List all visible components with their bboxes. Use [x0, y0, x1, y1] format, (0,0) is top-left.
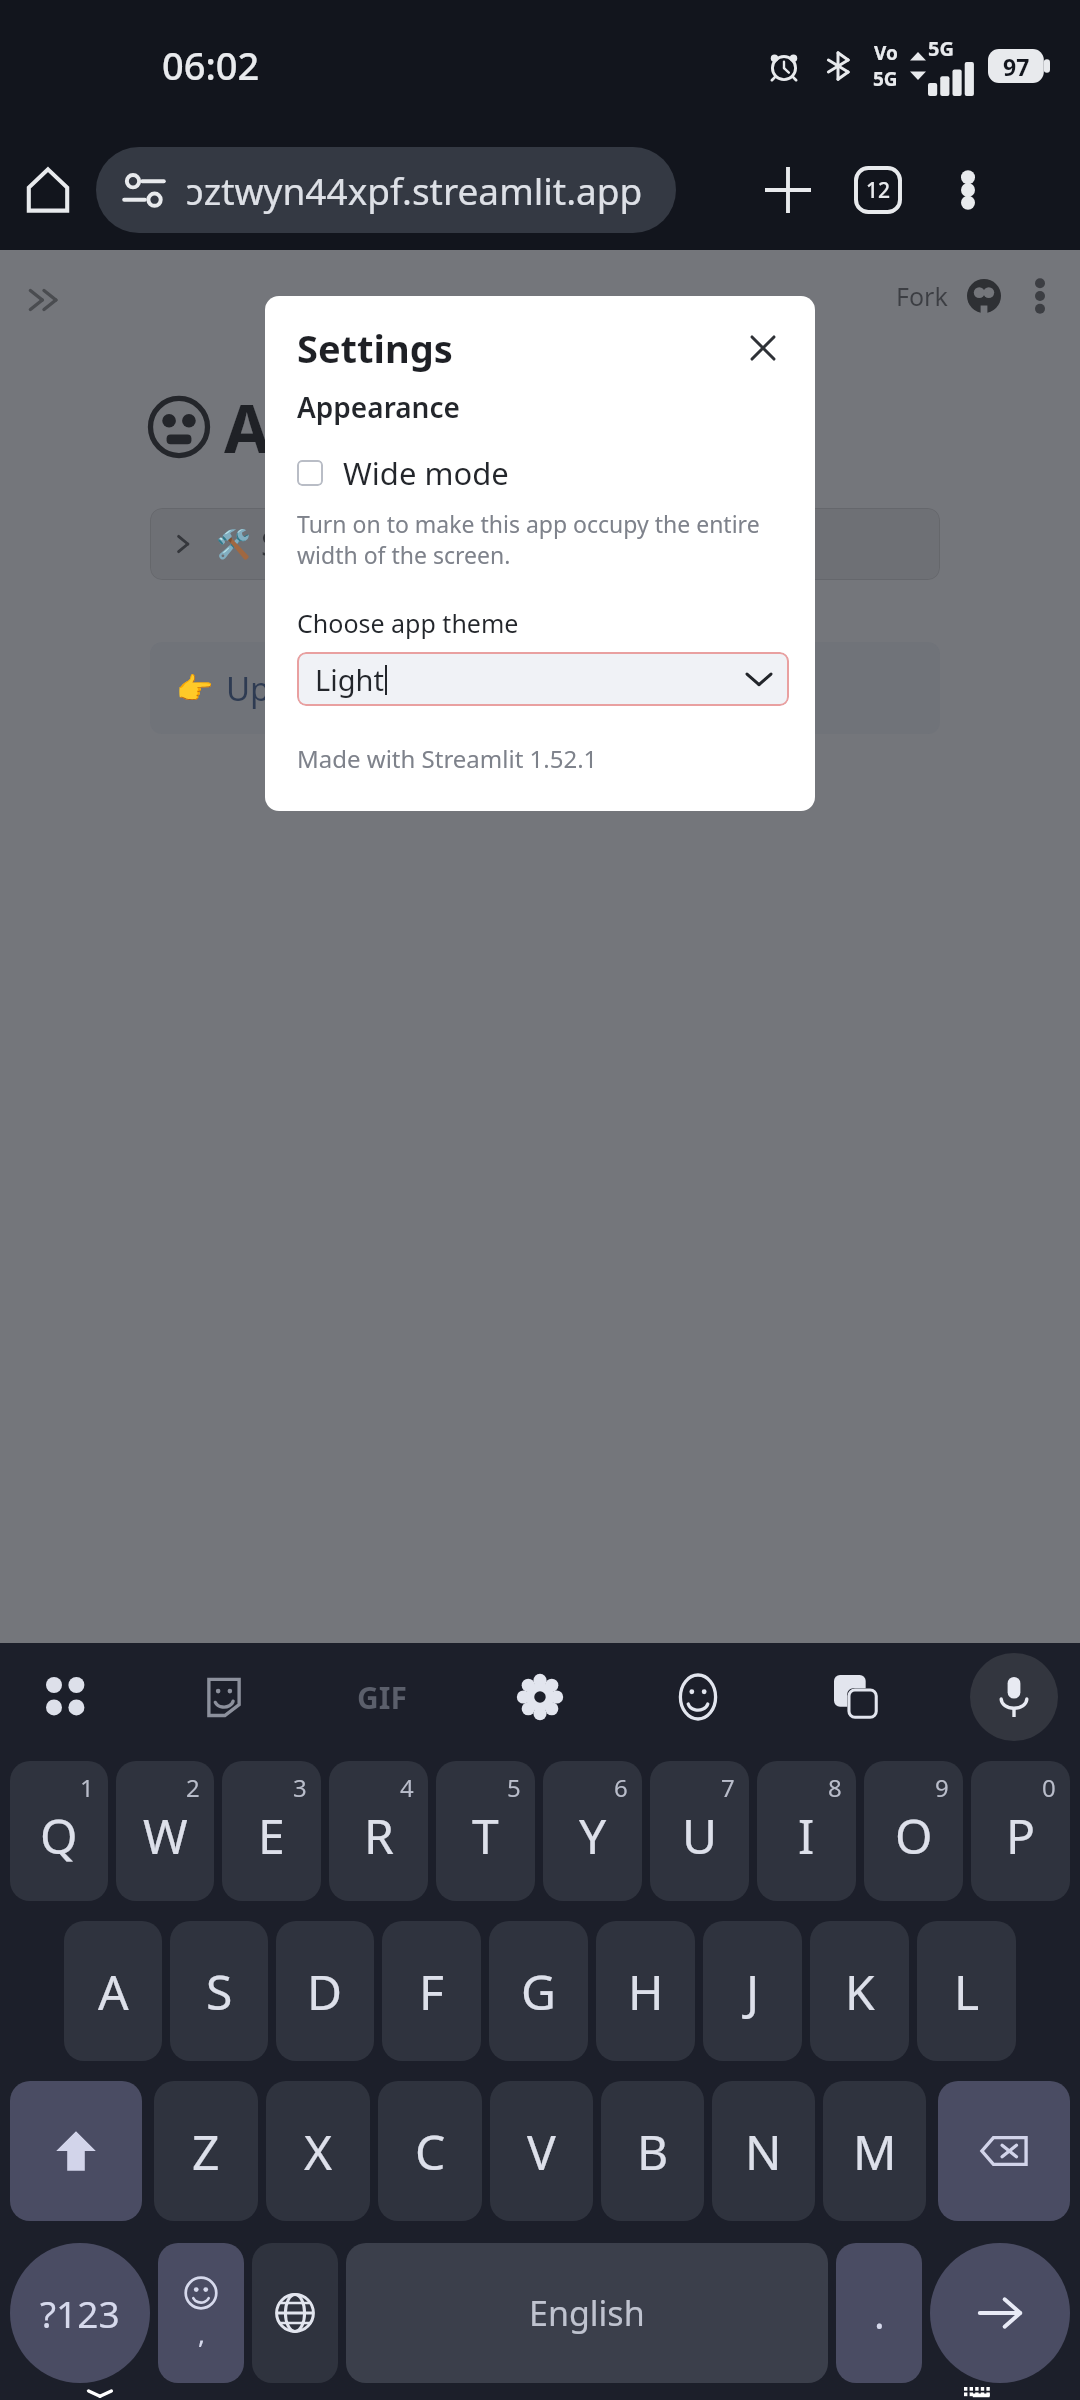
button[interactable]: Switch keyboard — [954, 2387, 1014, 2400]
staticText: 2 — [186, 1771, 200, 1804]
button[interactable]: GIF — [338, 1653, 426, 1741]
staticText: U — [682, 1803, 718, 1868]
button[interactable]: Wide mode — [297, 452, 509, 494]
button[interactable]: ?123 — [10, 2243, 150, 2383]
button[interactable]: 1 — [10, 1761, 108, 1901]
staticText: 9 — [935, 1771, 949, 1804]
button[interactable]: . — [836, 2243, 922, 2383]
button[interactable]: New tab — [743, 145, 833, 235]
staticText: A — [98, 1959, 129, 2024]
button[interactable]: Emoji — [654, 1653, 742, 1741]
staticText: Z — [192, 2119, 220, 2184]
staticText: W — [143, 1803, 188, 1868]
button[interactable]: S — [170, 1921, 268, 2061]
staticText: S — [206, 1959, 233, 2024]
button[interactable]: Emoji — [158, 2243, 244, 2383]
staticText: 🛠 — [216, 528, 251, 561]
button[interactable]: A — [64, 1921, 162, 2061]
staticText: Q — [40, 1803, 78, 1868]
button[interactable]: Expand sidebar — [14, 270, 74, 330]
button[interactable]: 2 — [116, 1761, 214, 1901]
button[interactable]: Light — [297, 652, 789, 706]
staticText: F — [419, 1959, 444, 2024]
button[interactable]: English — [346, 2243, 828, 2383]
button[interactable]: GitHub — [956, 268, 1012, 324]
staticText: Upload R — [226, 666, 367, 711]
button[interactable]: Hide keyboard — [70, 2387, 130, 2400]
button[interactable]: 0 — [971, 1761, 1070, 1901]
button[interactable]: 5 — [436, 1761, 535, 1901]
button[interactable]: Enter — [930, 2243, 1070, 2383]
staticText: 5G — [873, 66, 898, 92]
button[interactable]: J — [703, 1921, 802, 2061]
button[interactable]: Shift — [10, 2081, 142, 2221]
staticText: 8 — [828, 1771, 842, 1804]
staticText: Settings — [297, 322, 453, 374]
staticText: Fork — [896, 279, 948, 313]
staticText: B — [637, 2119, 669, 2184]
staticText: N — [745, 2119, 782, 2184]
staticText: 7 — [721, 1771, 735, 1804]
staticText: 5 — [507, 1771, 521, 1804]
staticText: 12 — [866, 176, 891, 205]
staticText: Choose app theme — [297, 606, 519, 640]
button[interactable]: Backspace — [938, 2081, 1070, 2221]
staticText: D — [307, 1959, 343, 2024]
staticText: 97 — [1003, 51, 1030, 82]
staticText: Made with Streamlit 1.52.1 — [297, 742, 598, 775]
staticText: 06:02 — [162, 39, 260, 91]
button[interactable]: More options — [923, 145, 1013, 235]
button[interactable]: Z — [154, 2081, 258, 2221]
staticText: ɔztwyn44xpf.streamlit.app — [186, 165, 643, 215]
button[interactable]: 9 — [864, 1761, 963, 1901]
button[interactable]: B — [601, 2081, 704, 2221]
staticText: E — [258, 1803, 285, 1868]
button[interactable]: 4 — [329, 1761, 428, 1901]
button[interactable]: Fork — [888, 269, 956, 323]
button[interactable]: ɔztwyn44xpf.streamlit.app — [96, 147, 676, 233]
staticText: Syste — [261, 522, 340, 566]
button[interactable]: 7 — [650, 1761, 749, 1901]
button[interactable]: 👉 — [150, 642, 940, 734]
button[interactable]: Menu — [1012, 268, 1068, 324]
button[interactable]: Settings — [496, 1653, 584, 1741]
button[interactable]: D — [276, 1921, 374, 2061]
button[interactable]: 6 — [543, 1761, 642, 1901]
button[interactable]: K — [810, 1921, 909, 2061]
button[interactable]: Translate — [812, 1653, 900, 1741]
button[interactable]: Voice input — [970, 1653, 1058, 1741]
button[interactable]: H — [596, 1921, 695, 2061]
button[interactable]: Tabs — [833, 145, 923, 235]
button[interactable]: F — [382, 1921, 481, 2061]
staticText: 3 — [293, 1771, 307, 1804]
staticText: Y — [579, 1803, 607, 1868]
staticText: Appearance — [297, 388, 460, 426]
button[interactable]: G — [489, 1921, 588, 2061]
staticText: 6 — [614, 1771, 628, 1804]
button[interactable]: Clipboard — [22, 1653, 110, 1741]
staticText: V — [527, 2119, 556, 2184]
button[interactable]: 3 — [222, 1761, 321, 1901]
button[interactable]: N — [712, 2081, 815, 2221]
staticText: Light — [315, 660, 384, 699]
button[interactable]: C — [378, 2081, 482, 2221]
staticText: I — [798, 1803, 815, 1868]
button[interactable]: 8 — [757, 1761, 856, 1901]
button[interactable]: Change language — [252, 2243, 338, 2383]
button[interactable]: 🛠 — [150, 508, 940, 580]
button[interactable]: M — [823, 2081, 926, 2221]
staticText: X — [304, 2119, 333, 2184]
staticText: 1 — [80, 1771, 94, 1804]
staticText: English — [529, 2290, 645, 2336]
button[interactable]: Home — [0, 142, 96, 238]
staticText: R — [364, 1803, 394, 1868]
button[interactable]: Stickers — [180, 1653, 268, 1741]
button[interactable]: L — [917, 1921, 1016, 2061]
button[interactable]: Close — [737, 322, 789, 374]
button[interactable]: V — [490, 2081, 593, 2221]
staticText: O — [895, 1803, 933, 1868]
staticText: Wide mode — [343, 452, 509, 494]
staticText: 4 — [400, 1771, 414, 1804]
button[interactable]: X — [266, 2081, 370, 2221]
staticText: P — [1006, 1803, 1036, 1868]
